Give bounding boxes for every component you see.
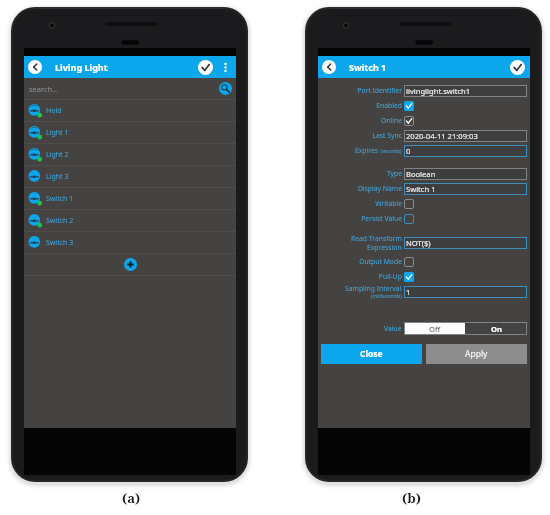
button[interactable]: Hold: [24, 100, 236, 121]
button[interactable]: 1: [404, 286, 527, 298]
button[interactable]: Light 1: [24, 122, 236, 143]
staticText: (milliseconds): [371, 293, 402, 299]
staticText: Switch 1: [349, 61, 387, 73]
staticText: Apply: [465, 348, 488, 360]
staticText: Expression: [367, 243, 402, 252]
staticText: Switch 1: [46, 194, 74, 204]
staticText: Writable: [375, 199, 402, 208]
button[interactable]: Back: [322, 60, 336, 74]
staticText: (b): [402, 489, 421, 507]
staticText: Type: [386, 169, 402, 178]
staticText: Light 3: [46, 172, 69, 182]
button[interactable]: Back: [28, 60, 42, 74]
button[interactable]: Switch 2: [24, 210, 236, 231]
button[interactable]: Pull-Up: [404, 272, 414, 282]
button[interactable]: Switch 3: [24, 232, 236, 253]
staticText: Enabled: [376, 101, 402, 110]
button[interactable]: Boolean: [404, 168, 527, 180]
button[interactable]: Search: [219, 82, 232, 95]
button[interactable]: Enabled: [404, 101, 414, 111]
staticText: Switch 3: [46, 238, 74, 248]
staticText: Output Mode: [359, 257, 402, 266]
button[interactable]: Light 2: [24, 144, 236, 165]
staticText: Boolean: [406, 169, 436, 179]
button[interactable]: Switch 1: [404, 183, 527, 195]
button[interactable]: Off: [404, 322, 465, 335]
button[interactable]: search...: [24, 78, 236, 99]
staticText: Off: [429, 324, 441, 334]
button[interactable]: Output Mode: [404, 257, 414, 267]
staticText: 0: [406, 146, 411, 156]
button[interactable]: 2020-04-11 21:09:03: [404, 130, 527, 142]
staticText: Pull-Up: [378, 272, 402, 281]
button[interactable]: Persist Value: [404, 214, 414, 224]
staticText: On: [491, 324, 502, 334]
staticText: (seconds): [379, 148, 402, 155]
button[interactable]: Close: [321, 344, 422, 364]
staticText: Light 2: [46, 150, 69, 160]
button[interactable]: Online: [404, 116, 414, 126]
button[interactable]: Writable: [404, 199, 414, 209]
staticText: Last Sync: [372, 131, 402, 140]
staticText: livinglight.switch1: [406, 86, 471, 96]
button[interactable]: On: [465, 322, 527, 335]
button[interactable]: Apply: [426, 344, 527, 364]
staticText: Switch 1: [406, 184, 436, 194]
staticText: Switch 2: [46, 216, 74, 226]
button[interactable]: Save: [196, 58, 215, 77]
button[interactable]: Add port: [24, 254, 236, 275]
button[interactable]: 0: [404, 145, 527, 157]
button[interactable]: Light 3: [24, 166, 236, 187]
staticText: (a): [122, 489, 141, 507]
staticText: Close: [360, 348, 383, 360]
button[interactable]: Save: [508, 58, 527, 77]
button[interactable]: Switch 1: [24, 188, 236, 209]
button[interactable]: NOT($): [404, 237, 527, 249]
staticText: Hold: [46, 106, 62, 116]
staticText: Online: [380, 116, 402, 125]
staticText: Value: [384, 324, 402, 333]
staticText: NOT($): [406, 238, 431, 248]
button[interactable]: livinglight.switch1: [404, 85, 527, 97]
staticText: Living Light: [55, 61, 108, 73]
staticText: Expires: [355, 146, 379, 155]
button[interactable]: More options: [215, 57, 236, 78]
staticText: Light 1: [46, 128, 69, 138]
staticText: Display Name: [357, 184, 402, 193]
staticText: Read Transform: [351, 234, 402, 243]
staticText: Sampling Interval: [345, 284, 402, 293]
staticText: Port Identifier: [357, 86, 402, 95]
staticText: Persist Value: [361, 214, 402, 223]
staticText: search...: [29, 84, 59, 94]
staticText: 2020-04-11 21:09:03: [406, 131, 478, 141]
staticText: 1: [406, 287, 411, 297]
